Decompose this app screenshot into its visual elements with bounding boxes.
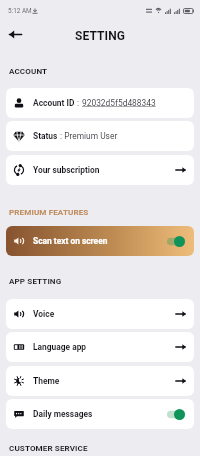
other: Open: [175, 311, 186, 317]
staticText: Scan text on screen: [33, 236, 108, 246]
staticText: Account ID: [33, 98, 75, 108]
staticText: SETTING: [75, 29, 126, 43]
staticText: APP SETTING: [9, 276, 62, 285]
button[interactable]: Status: [6, 121, 194, 151]
staticText: Your subscription: [33, 165, 100, 175]
other: Open: [175, 344, 186, 350]
button[interactable]: Scan text on screen: [6, 226, 194, 256]
staticText: Status: [33, 131, 58, 141]
staticText: Theme: [33, 376, 60, 386]
other: Open: [175, 167, 186, 173]
staticText: ACCOUNT: [9, 66, 48, 75]
staticText: :: [75, 98, 82, 108]
staticText: Daily messages: [33, 409, 93, 419]
button[interactable]: Theme: [6, 366, 194, 396]
button[interactable]: Your subscription: [6, 155, 194, 185]
staticText: CUSTOMER SERVICE: [9, 443, 88, 452]
staticText: PREMIUM FEATURES: [9, 207, 89, 216]
staticText: Voice: [33, 309, 55, 319]
staticText: Language app: [33, 342, 87, 352]
button[interactable]: Toggle: [167, 408, 185, 421]
button[interactable]: Voice: [6, 299, 194, 329]
staticText: : Premium User: [58, 131, 118, 141]
button[interactable]: Toggle: [167, 235, 185, 248]
other: Open: [175, 378, 186, 384]
staticText: 5:12 AM: [8, 7, 32, 15]
button[interactable]: Account ID: [6, 88, 194, 118]
button[interactable]: Language app: [6, 332, 194, 362]
button[interactable]: Daily messages: [6, 399, 194, 429]
staticText: 92032d5f5d488343: [82, 98, 156, 108]
button[interactable]: Back: [4, 23, 26, 45]
